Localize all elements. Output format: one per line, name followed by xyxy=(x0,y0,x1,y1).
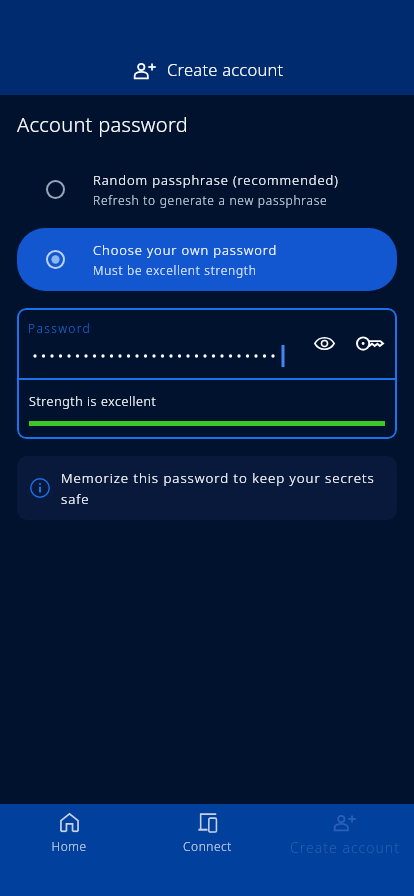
button[interactable]: Memorize this password to keep your secr… xyxy=(17,456,397,520)
button[interactable]: Create account xyxy=(276,804,414,857)
button[interactable]: Random passphrase (recommended) xyxy=(17,158,397,221)
button[interactable]: Show password xyxy=(301,320,347,366)
button[interactable]: Home xyxy=(0,804,138,854)
staticText: Refresh to generate a new passphrase xyxy=(93,192,328,208)
staticText: Connect xyxy=(183,838,232,854)
button[interactable]: Create account xyxy=(128,57,290,85)
staticText: Strength is excellent xyxy=(29,393,157,410)
staticText: Password xyxy=(28,320,92,336)
staticText: Must be excellent strength xyxy=(93,262,257,278)
button[interactable]: Password xyxy=(17,308,397,378)
button[interactable]: Choose your own password xyxy=(17,228,397,291)
staticText: Random passphrase (recommended) xyxy=(93,171,339,189)
staticText: Memorize this password to keep your secr… xyxy=(61,469,385,508)
staticText: Account password xyxy=(17,111,188,138)
staticText: Home xyxy=(51,838,87,854)
button[interactable]: Connect xyxy=(138,804,276,854)
staticText: Create account xyxy=(167,58,284,80)
staticText: Create account xyxy=(290,838,400,857)
staticText: Choose your own password xyxy=(93,241,278,259)
button[interactable]: Generate password xyxy=(347,320,393,366)
